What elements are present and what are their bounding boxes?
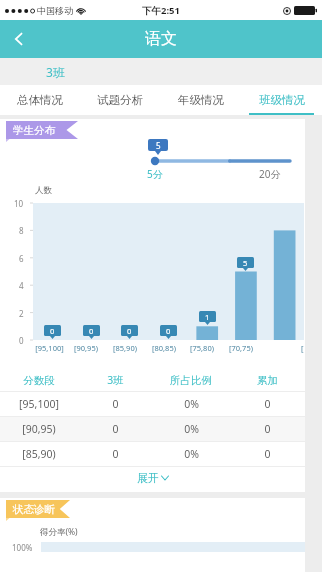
button[interactable]: Back — [0, 20, 38, 58]
button[interactable]: [95,100] — [0, 392, 305, 416]
button[interactable]: 3班 — [0, 58, 322, 85]
staticText: 0 — [112, 422, 119, 436]
staticText: 0 — [264, 447, 271, 461]
button[interactable]: [90,95) — [0, 417, 305, 441]
staticText: 下午2:51 — [142, 4, 180, 17]
staticText: 1 — [205, 312, 210, 322]
staticText: 0 — [19, 335, 24, 346]
staticText: 0 — [127, 326, 132, 336]
button[interactable]: 总体情况 — [0, 85, 80, 115]
staticText: 0% — [184, 447, 199, 461]
staticText: [90,95) — [22, 422, 56, 436]
staticText: 0 — [264, 422, 271, 436]
staticText: 得分率(%) — [40, 526, 78, 538]
staticText: 所占比例 — [170, 374, 212, 387]
staticText: 5 — [156, 140, 161, 151]
staticText: 0 — [112, 397, 119, 411]
staticText: 累加 — [257, 374, 278, 387]
staticText: 0 — [264, 397, 271, 411]
staticText: 状态诊断 — [13, 503, 55, 516]
staticText: 20分 — [259, 167, 281, 181]
staticText: 总体情况 — [17, 93, 63, 107]
staticText: 6 — [19, 253, 24, 264]
staticText: 展开 — [137, 471, 159, 485]
staticText: 分数段 — [23, 374, 55, 387]
staticText: 5分 — [147, 167, 163, 181]
staticText: 学生分布 — [13, 124, 55, 137]
staticText: 8 — [19, 225, 24, 236]
staticText: 语文 — [145, 29, 177, 49]
button[interactable]: 展开 — [0, 467, 305, 489]
staticText: [85,90) — [113, 343, 137, 353]
staticText: [90,95) — [74, 343, 98, 353]
button[interactable]: 班级情况 — [241, 85, 322, 115]
staticText: [75,80) — [190, 343, 214, 353]
staticText: 100% — [12, 542, 33, 553]
staticText: 试题分析 — [97, 93, 143, 107]
staticText: 0 — [89, 326, 94, 336]
staticText: 年级情况 — [178, 93, 224, 107]
button[interactable]: [85,90) — [0, 442, 305, 466]
staticText: 3班 — [107, 373, 124, 387]
staticText: [95,100] — [19, 397, 59, 411]
staticText: [ — [301, 343, 304, 353]
staticText: 0% — [184, 397, 199, 411]
staticText: 5 — [243, 258, 248, 268]
staticText: 0% — [184, 422, 199, 436]
staticText: [85,90) — [22, 447, 56, 461]
staticText: 0 — [112, 447, 119, 461]
staticText: 3班 — [46, 64, 65, 80]
staticText: [70,75) — [229, 343, 253, 353]
staticText: 人数 — [35, 185, 52, 196]
staticText: 0 — [166, 326, 171, 336]
staticText: 4 — [19, 280, 24, 291]
staticText: 班级情况 — [259, 93, 305, 107]
staticText: 2 — [19, 308, 24, 319]
staticText: 10 — [14, 198, 24, 209]
staticText: 0 — [50, 326, 55, 336]
button[interactable]: 试题分析 — [80, 85, 160, 115]
staticText: 中国移动 — [37, 5, 73, 16]
staticText: [80,85) — [152, 343, 176, 353]
staticText: [95,100] — [35, 343, 64, 353]
button[interactable]: 年级情况 — [160, 85, 241, 115]
